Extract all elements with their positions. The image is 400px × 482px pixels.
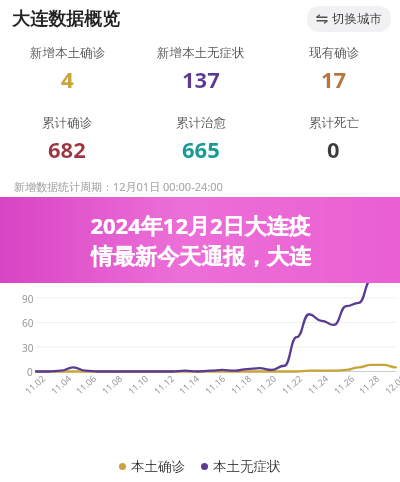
staticText: 137 bbox=[182, 64, 220, 94]
staticText: 11.12 bbox=[151, 371, 177, 396]
staticText: 11.24 bbox=[305, 371, 331, 396]
staticText: 4 bbox=[61, 64, 74, 94]
staticText: 11.10 bbox=[125, 371, 151, 396]
staticText: 11.04 bbox=[48, 371, 74, 396]
staticText: 11.14 bbox=[176, 371, 202, 396]
button[interactable]: 累计确诊 bbox=[0, 115, 134, 164]
staticText: 11.26 bbox=[331, 371, 357, 396]
staticText: 665 bbox=[182, 134, 220, 164]
staticText: 17 bbox=[321, 64, 347, 94]
button[interactable]: Switch city bbox=[307, 6, 391, 32]
staticText: 累计确诊 bbox=[42, 115, 92, 131]
staticText: 本土无症状 bbox=[213, 458, 281, 475]
staticText: 累计死亡 bbox=[309, 115, 359, 131]
button[interactable]: 累计治愈 bbox=[134, 115, 267, 164]
staticText: 现有确诊 bbox=[309, 45, 359, 61]
button[interactable]: 大连数据概览 bbox=[12, 8, 120, 31]
staticText: 12.01 bbox=[382, 371, 400, 396]
staticText: 本土确诊 bbox=[131, 458, 185, 475]
button[interactable]: 累计死亡 bbox=[267, 115, 400, 164]
button[interactable]: 现有确诊 bbox=[267, 45, 400, 94]
staticText: 11.18 bbox=[228, 371, 254, 396]
button[interactable]: 疫情趋势 bbox=[14, 217, 70, 235]
staticText: 90 bbox=[22, 292, 34, 306]
staticText: 11.22 bbox=[279, 371, 305, 396]
staticText: 11.06 bbox=[73, 371, 99, 396]
staticText: 累计治愈 bbox=[176, 115, 226, 131]
button[interactable]: 本土无症状 bbox=[201, 458, 281, 475]
staticText: 新增本土无症状 bbox=[157, 45, 245, 61]
staticText: 0 bbox=[27, 365, 33, 379]
staticText: 60 bbox=[22, 316, 34, 330]
button[interactable]: 新增本土确诊 bbox=[0, 45, 134, 94]
staticText: 0 bbox=[327, 134, 340, 164]
staticText: 新增数据统计周期：12月01日 00:00-24:00 bbox=[14, 179, 223, 194]
staticText: 30 bbox=[22, 341, 34, 355]
staticText: 11.28 bbox=[356, 371, 382, 396]
staticText: 2024年12月2日大连疫 bbox=[90, 210, 311, 240]
button[interactable]: 30天 bbox=[199, 218, 225, 234]
staticText: 11.16 bbox=[202, 371, 228, 396]
staticText: 11.02 bbox=[22, 371, 48, 396]
button[interactable]: 新增本土无症状 bbox=[134, 45, 267, 94]
staticText: 11.08 bbox=[99, 371, 125, 396]
button[interactable]: 本土确诊 bbox=[119, 458, 185, 475]
staticText: 11.20 bbox=[253, 371, 279, 396]
staticText: 切换城市 bbox=[332, 11, 382, 27]
staticText: 情最新今天通报，大连 bbox=[91, 243, 311, 271]
staticText: 新增本土确诊 bbox=[30, 45, 105, 61]
staticText: 682 bbox=[48, 134, 86, 164]
